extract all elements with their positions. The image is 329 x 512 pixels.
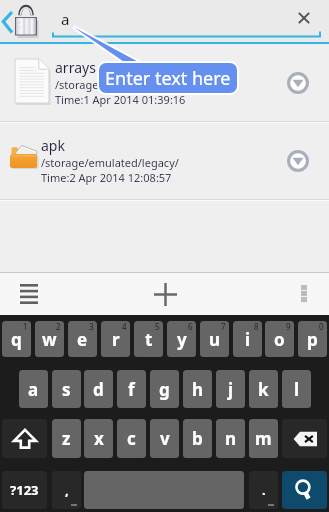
button[interactable]: j: [216, 370, 245, 408]
staticText: 6: [188, 321, 193, 332]
button[interactable]: d: [84, 370, 113, 408]
staticText: 5: [155, 321, 160, 332]
staticText: f: [128, 378, 135, 401]
staticText: l: [294, 378, 300, 401]
staticText: x: [94, 427, 104, 450]
staticText: Time:1 Apr 2014 01:39:16: [55, 92, 186, 107]
staticText: t: [145, 328, 153, 351]
staticText: r: [112, 328, 120, 351]
button[interactable]: e: [68, 321, 97, 357]
staticText: c: [127, 427, 136, 450]
staticText: /storage: [55, 77, 99, 92]
button[interactable]: o: [265, 321, 294, 357]
button[interactable]: Expand: [283, 122, 313, 200]
button[interactable]: z: [52, 419, 81, 458]
staticText: w: [42, 328, 57, 351]
button[interactable]: n: [216, 419, 245, 458]
button[interactable]: t: [134, 321, 163, 357]
staticText: ?123: [10, 481, 39, 499]
staticText: 7: [221, 321, 226, 332]
button[interactable]: Backspace: [282, 419, 327, 458]
staticText: 9: [286, 321, 291, 332]
button[interactable]: Clear text: [291, 5, 317, 31]
button[interactable]: i: [233, 321, 262, 357]
button[interactable]: s: [52, 370, 81, 408]
staticText: j: [228, 378, 234, 401]
staticText: Time:2 Apr 2014 12:08:57: [41, 170, 172, 185]
staticText: a: [61, 9, 70, 29]
staticText: 8: [254, 321, 259, 332]
staticText: n: [225, 427, 237, 450]
staticText: s: [62, 378, 71, 401]
staticText: /storage/emulated/legacy/: [41, 155, 179, 170]
button[interactable]: k: [249, 370, 278, 408]
staticText: Enter text here: [105, 66, 231, 91]
button[interactable]: y: [167, 321, 196, 357]
staticText: d: [93, 378, 104, 401]
button[interactable]: ,: [52, 471, 81, 509]
button[interactable]: f: [117, 370, 146, 408]
button[interactable]: arrays: [0, 44, 329, 122]
staticText: e: [77, 328, 88, 351]
staticText: u: [209, 328, 221, 351]
staticText: 0: [319, 321, 324, 332]
staticText: arrays: [55, 58, 96, 77]
staticText: o: [274, 328, 285, 351]
staticText: z: [62, 427, 71, 450]
staticText: g: [159, 378, 170, 401]
button[interactable]: g: [150, 370, 179, 408]
button[interactable]: l: [282, 370, 311, 408]
staticText: a: [28, 378, 39, 401]
staticText: k: [258, 378, 269, 401]
button[interactable]: a: [19, 370, 48, 408]
staticText: m: [255, 427, 272, 450]
button[interactable]: Shift: [2, 419, 47, 458]
staticText: apk: [41, 136, 65, 155]
staticText: .: [262, 481, 266, 499]
button[interactable]: Add: [141, 273, 189, 315]
button[interactable]: ?123: [2, 471, 47, 509]
staticText: h: [192, 378, 204, 401]
staticText: 1: [23, 321, 28, 332]
button[interactable]: r: [101, 321, 130, 357]
button[interactable]: Enter text here: [99, 63, 237, 93]
button[interactable]: w: [35, 321, 64, 357]
staticText: b: [192, 427, 203, 450]
button[interactable]: Search: [282, 471, 327, 509]
button[interactable]: c: [117, 419, 146, 458]
staticText: 4: [122, 321, 127, 332]
button[interactable]: v: [150, 419, 179, 458]
button[interactable]: Menu: [4, 273, 52, 315]
button[interactable]: q: [2, 321, 31, 357]
button[interactable]: u: [200, 321, 229, 357]
button[interactable]: m: [249, 419, 278, 458]
button[interactable]: Expand: [283, 44, 313, 122]
button[interactable]: b: [183, 419, 212, 458]
button[interactable]: More options: [278, 273, 326, 315]
staticText: ,: [65, 481, 69, 499]
button[interactable]: x: [84, 419, 113, 458]
staticText: q: [11, 328, 22, 351]
staticText: p: [307, 328, 318, 351]
staticText: i: [245, 328, 251, 351]
button[interactable]: h: [183, 370, 212, 408]
button[interactable]: .: [249, 471, 278, 509]
button[interactable]: Back: [0, 6, 18, 38]
staticText: 3: [89, 321, 94, 332]
staticText: 2: [56, 321, 61, 332]
button[interactable]: apk: [0, 122, 329, 200]
button[interactable]: p: [298, 321, 327, 357]
staticText: v: [160, 427, 170, 450]
staticText: y: [177, 328, 187, 351]
